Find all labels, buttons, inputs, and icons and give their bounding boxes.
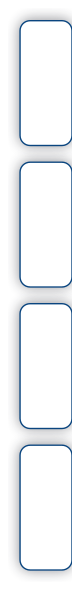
- button[interactable]: [20, 304, 72, 428]
- button[interactable]: [20, 445, 72, 570]
- button[interactable]: [20, 21, 72, 145]
- button[interactable]: [20, 162, 72, 287]
